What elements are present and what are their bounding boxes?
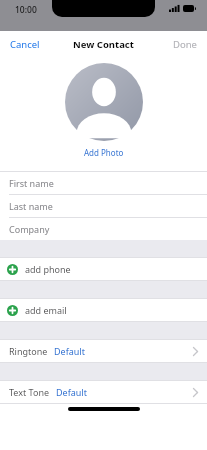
staticText: Done xyxy=(173,38,197,51)
button[interactable]: add phone xyxy=(0,258,207,280)
button[interactable]: Text Tone xyxy=(0,381,207,403)
staticText: 10:00 xyxy=(15,4,37,16)
staticText: Company xyxy=(9,223,50,235)
staticText: add email xyxy=(25,304,67,316)
staticText: Last name xyxy=(9,200,53,212)
button[interactable]: add email xyxy=(0,299,207,321)
staticText: Default xyxy=(54,345,85,357)
staticText: Cancel xyxy=(10,38,40,51)
staticText: Add Photo xyxy=(84,147,124,158)
staticText: New Contact xyxy=(73,38,134,51)
staticText: Text Tone xyxy=(9,386,50,398)
button[interactable]: Cancel xyxy=(0,33,48,56)
staticText: add phone xyxy=(25,263,71,275)
staticText: Ringtone xyxy=(9,345,48,357)
button[interactable]: Ringtone xyxy=(0,340,207,362)
button[interactable]: Done xyxy=(165,33,207,56)
button[interactable]: Add Photo xyxy=(65,63,143,141)
button[interactable]: Add Photo xyxy=(78,145,130,160)
staticText: First name xyxy=(9,177,54,189)
button[interactable]: First name xyxy=(0,172,207,194)
button[interactable]: Last name xyxy=(0,195,207,217)
staticText: Default xyxy=(56,386,87,398)
button[interactable]: Company xyxy=(0,218,207,240)
